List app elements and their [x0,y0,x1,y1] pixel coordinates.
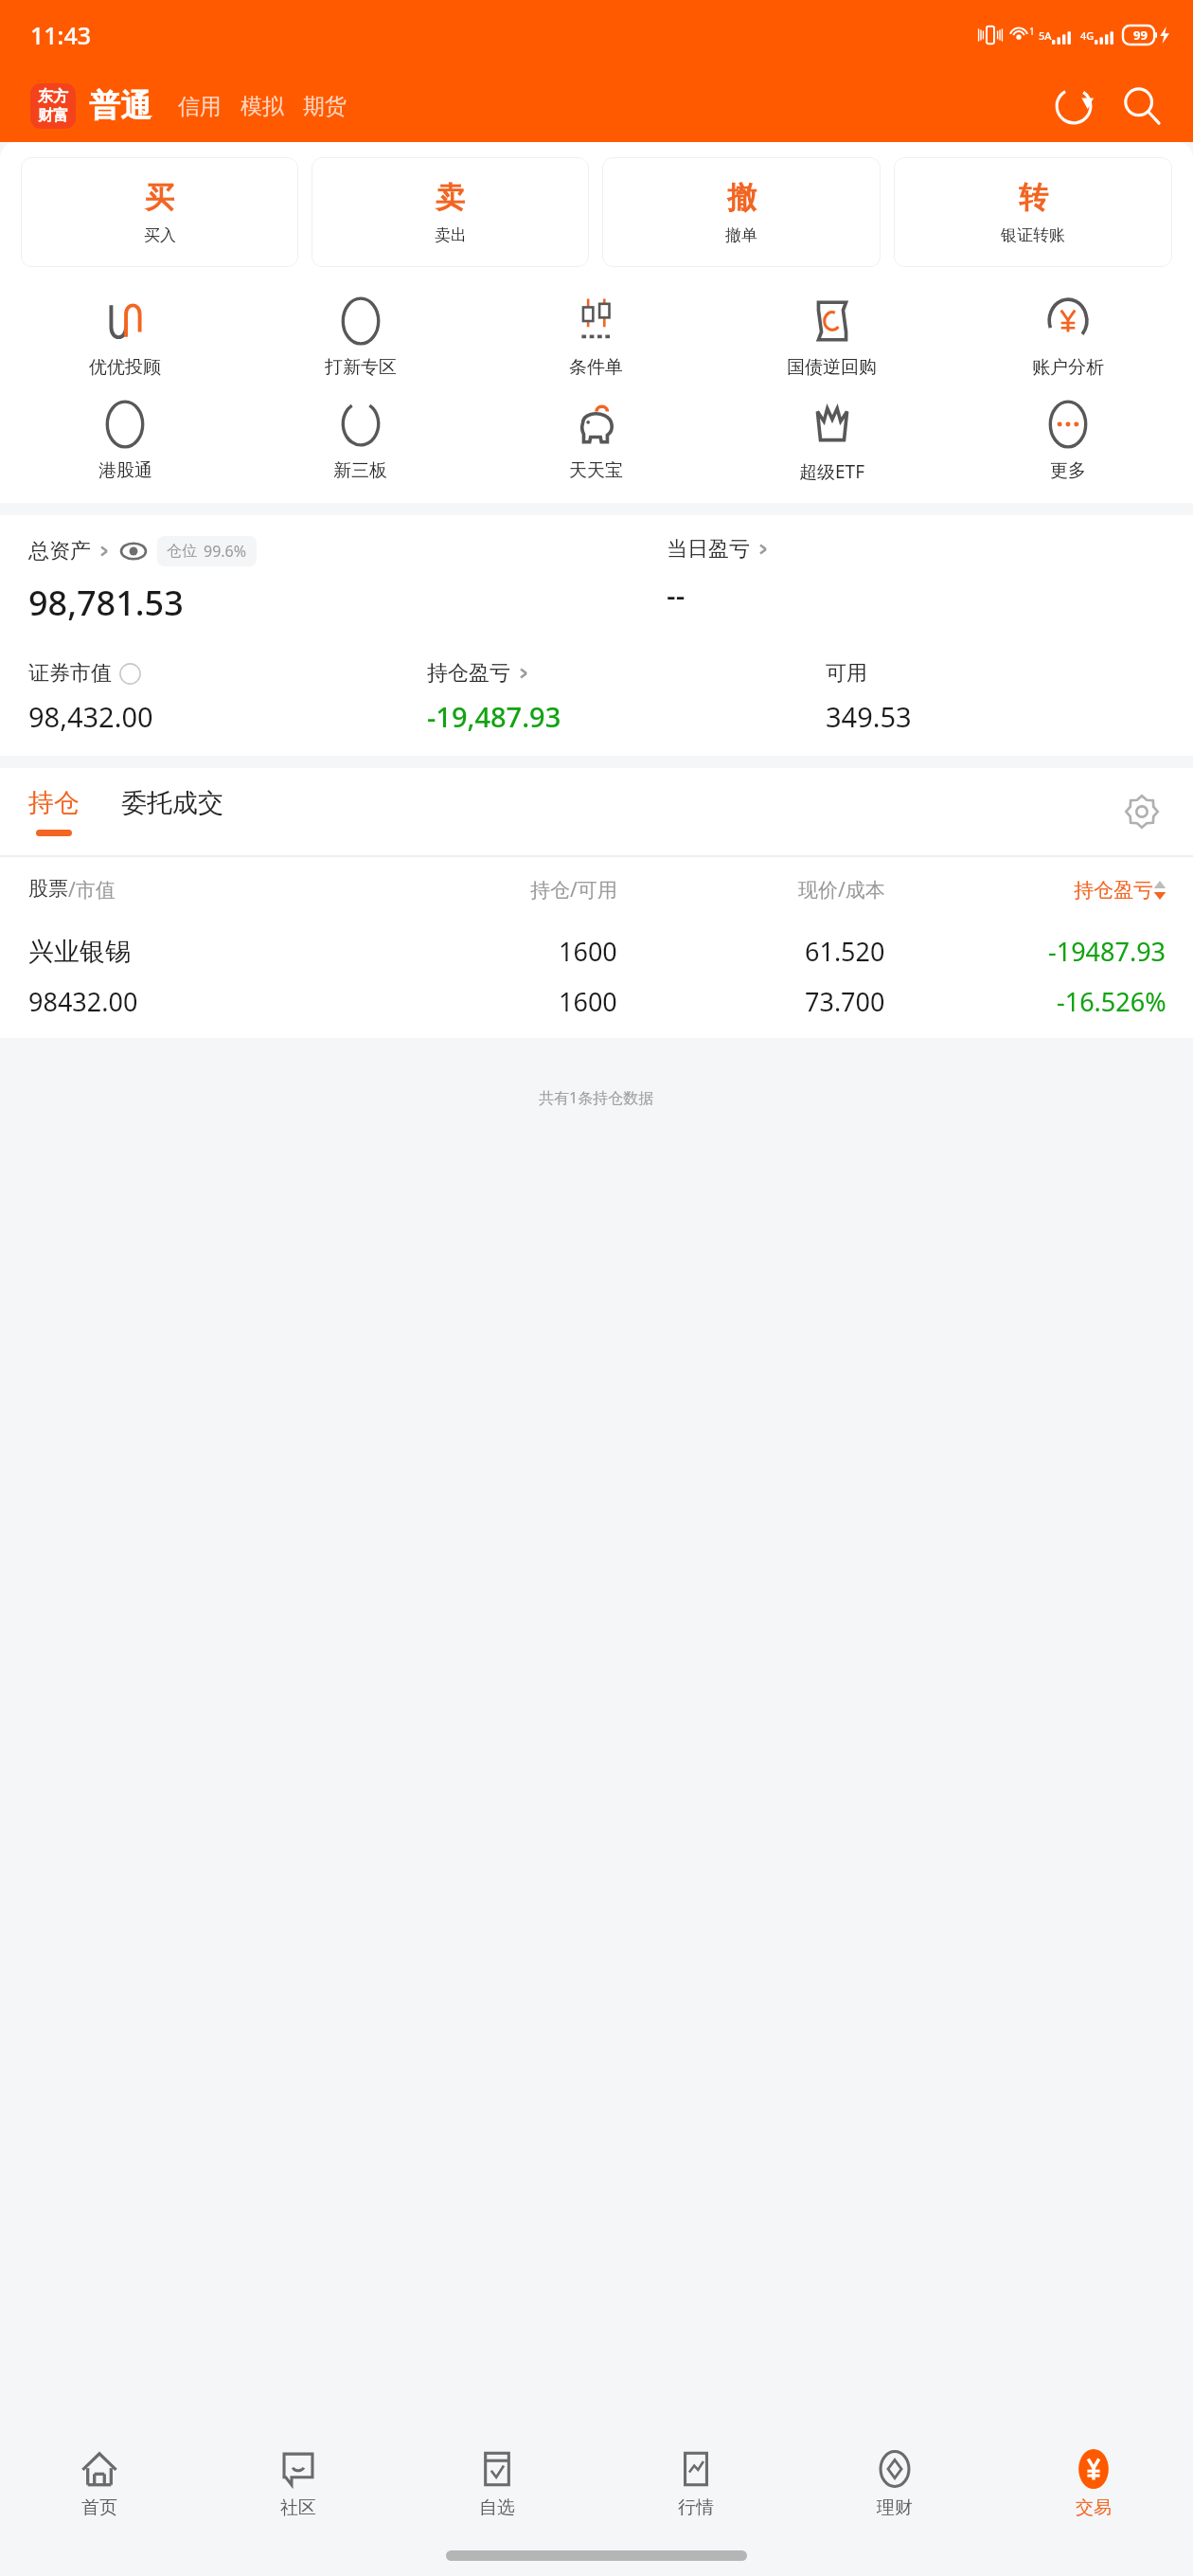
staticText: 73.700 [805,984,885,1019]
button[interactable]: 期货 [294,93,356,120]
button[interactable]: 新三板 [242,394,478,488]
button[interactable]: 打新专区 [242,291,478,385]
staticText: 仓位 [167,542,197,561]
staticText: 买入 [144,225,176,245]
staticText: 当日盈亏 [667,536,750,563]
staticText: 社区 [280,2496,316,2519]
staticText: 11:43 [30,19,92,51]
button[interactable]: 说明 [119,663,141,685]
staticText: 99 [1133,27,1148,44]
button[interactable]: 模拟 [231,93,294,120]
staticText: 银证转账 [1001,225,1065,245]
staticText: -- [667,576,686,615]
staticText: 可用 [826,660,867,687]
button[interactable]: 行情 [596,2432,795,2534]
staticText: 撤单 [725,225,757,245]
staticText: -16.526% [1057,984,1166,1019]
staticText: 港股通 [98,459,152,482]
staticText: 兴业银锡 [28,936,131,968]
button[interactable]: 国债逆回购 [714,291,950,385]
other: 隐藏金额 [121,539,146,563]
button[interactable]: 刷新 [1047,80,1100,133]
staticText: -19487.93 [1048,934,1166,969]
staticText: 98,781.53 [28,580,184,626]
staticText: 1 [1029,25,1035,38]
staticText: 1600 [559,984,617,1019]
staticText: 买 [145,179,174,216]
staticText: 99.6% [204,541,247,562]
button[interactable]: 买 [21,157,298,267]
button[interactable]: 当日盈亏 [667,536,769,563]
staticText: 普通 [89,86,151,126]
button[interactable]: 账户分析 [950,291,1185,385]
staticText: 超级ETF [799,459,864,484]
button[interactable]: 卖 [312,157,589,267]
button[interactable]: 转 [894,157,1172,267]
button[interactable]: 持仓盈亏 [427,660,529,687]
button[interactable]: 委托成交 [121,787,223,836]
staticText: 信用 [178,93,222,120]
staticText: 撤 [727,179,757,216]
staticText: 卖出 [435,225,467,245]
staticText: 总资产 [28,538,91,564]
staticText: /市值 [68,876,116,903]
staticText: 98,432.00 [28,698,153,735]
staticText: 行情 [678,2496,714,2519]
staticText: 交易 [1076,2496,1112,2519]
button[interactable]: 总资产 [28,536,257,566]
staticText: 持仓盈亏 [427,660,510,687]
button[interactable]: 自选 [398,2432,596,2534]
button[interactable]: 超级ETF [714,394,950,490]
button[interactable]: 信用 [169,93,231,120]
button[interactable]: 撤 [602,157,881,267]
button[interactable]: 搜索 [1115,80,1168,133]
button[interactable]: 理财 [795,2432,994,2534]
staticText: 委托成交 [121,787,223,819]
button[interactable]: 设置 [1119,789,1165,834]
staticText: 证券市值 [28,660,112,687]
staticText: 天天宝 [569,459,623,482]
staticText: 持仓 [28,787,80,819]
staticText: 1600 [559,934,617,969]
staticText: 新三板 [333,459,387,482]
button[interactable]: 天天宝 [478,394,714,488]
button[interactable]: 社区 [199,2432,398,2534]
button[interactable]: 港股通 [8,394,242,488]
staticText: 理财 [877,2496,913,2519]
staticText: 5A [1039,28,1052,43]
staticText: 自选 [479,2496,515,2519]
button[interactable]: 交易 [994,2432,1193,2534]
staticText: 打新专区 [325,356,397,379]
staticText: 股票 [28,876,68,901]
button[interactable]: 普通 [89,86,151,126]
staticText: 持仓/可用 [530,876,617,903]
staticText: 卖 [436,179,465,216]
button[interactable]: 兴业银锡 [0,919,1193,1038]
staticText: 61.520 [805,934,885,969]
staticText: 东方 [38,87,68,106]
staticText: 条件单 [569,356,623,379]
button[interactable]: 优优投顾 [8,291,242,385]
button[interactable]: 条件单 [478,291,714,385]
staticText: 349.53 [826,698,912,735]
staticText: 首页 [81,2496,117,2519]
staticText: 优优投顾 [89,356,161,379]
staticText: 共有1条持仓数据 [539,1087,654,1108]
staticText: 财富 [38,106,68,125]
button[interactable]: 更多 [950,394,1185,488]
button[interactable]: 首页 [0,2432,199,2534]
button[interactable]: 东方 [30,83,76,129]
staticText: 持仓盈亏 [1074,878,1153,903]
staticText: 4G [1080,28,1095,43]
staticText: 现价/成本 [798,876,885,903]
staticText: 更多 [1050,459,1086,482]
staticText: 转 [1019,179,1048,216]
staticText: 期货 [303,93,347,120]
staticText: 账户分析 [1032,356,1104,379]
staticText: -19,487.93 [427,698,561,735]
staticText: 模拟 [240,93,284,120]
staticText: 国债逆回购 [787,356,877,379]
button[interactable]: 持仓 [28,787,80,836]
staticText: 98432.00 [28,984,138,1019]
